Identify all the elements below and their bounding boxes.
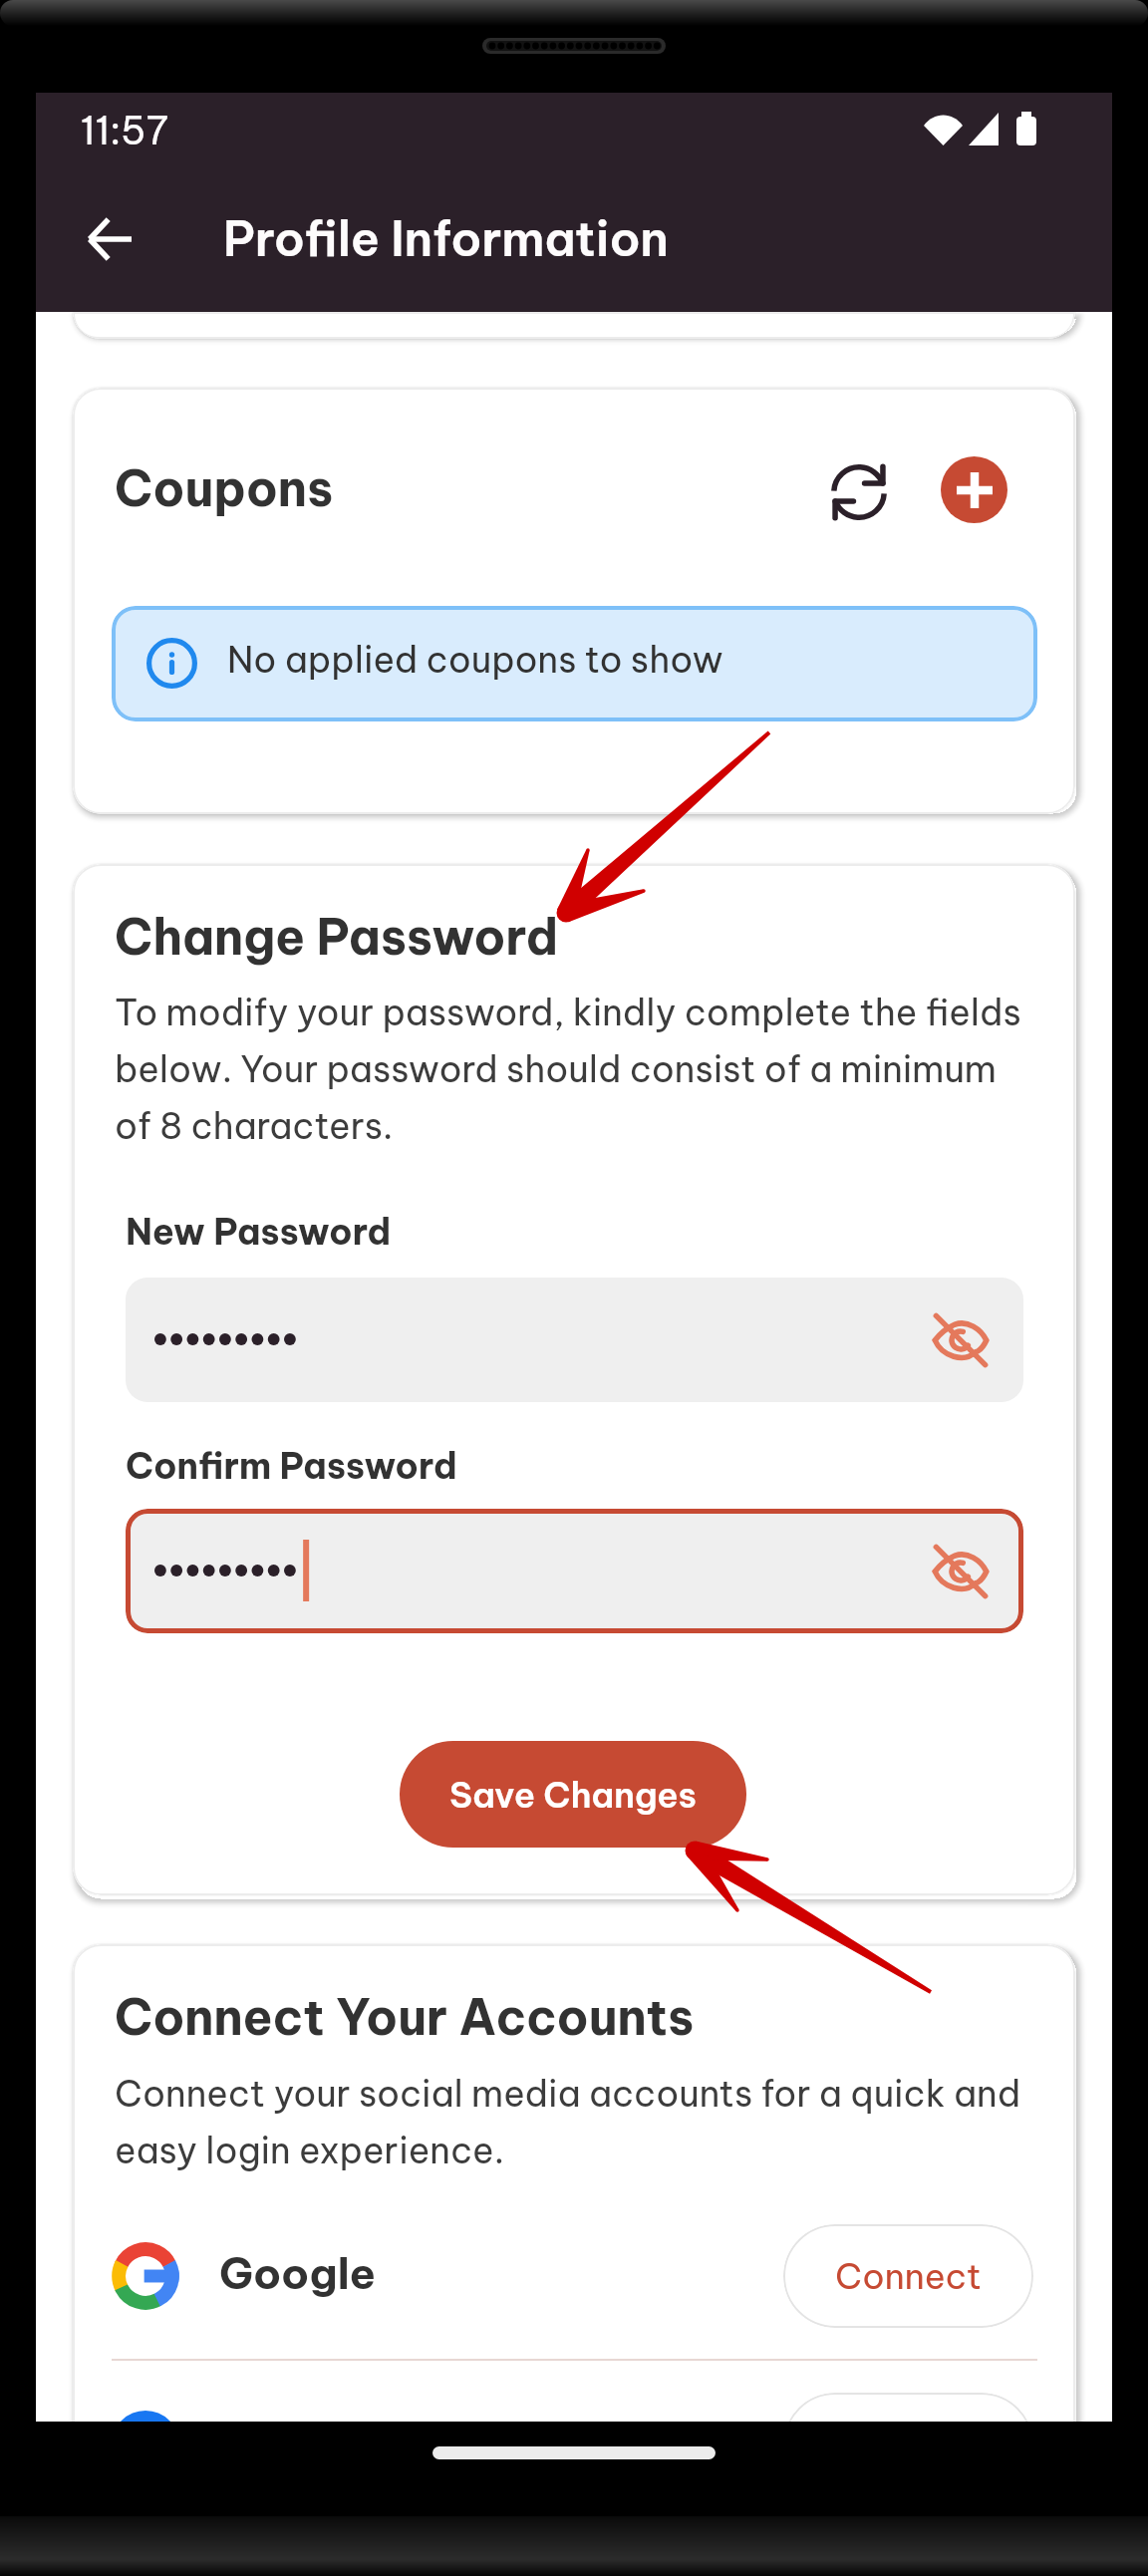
button[interactable]: Connect (783, 2393, 1033, 2422)
staticText: Connect your social media accounts for a… (115, 2071, 1031, 2173)
button[interactable]: Save Changes (400, 1741, 746, 1848)
button[interactable]: Connect (783, 2224, 1033, 2328)
staticText: Google (219, 2246, 377, 2300)
button[interactable]: Show password (922, 1301, 1000, 1379)
staticText: Coupons (115, 457, 334, 519)
staticText: Connect Your Accounts (115, 1986, 695, 2048)
button[interactable]: Show password (126, 1509, 1023, 1633)
staticText: To modify your password, kindly complete… (115, 990, 1031, 1149)
button[interactable]: Show password (922, 1533, 1000, 1610)
button[interactable]: Add coupon (941, 456, 1007, 523)
staticText: Change Password (115, 906, 559, 968)
button[interactable]: Back (70, 199, 149, 279)
staticText: Connect (835, 2254, 982, 2298)
staticText: 11:57 (81, 107, 168, 154)
staticText: No applied coupons to show (227, 637, 723, 683)
staticText: Save Changes (449, 1773, 698, 1817)
button[interactable]: Show password (126, 1278, 1023, 1402)
staticText: New Password (126, 1209, 392, 1255)
staticText: Confirm Password (126, 1443, 457, 1489)
button[interactable]: Refresh coupons (818, 451, 900, 533)
staticText: Profile Information (223, 208, 669, 269)
